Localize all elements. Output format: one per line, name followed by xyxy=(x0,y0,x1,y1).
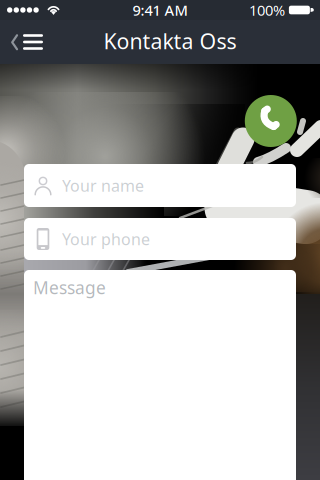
staticText: Message xyxy=(33,276,106,299)
button[interactable]: Call xyxy=(245,95,297,147)
staticText: Your phone xyxy=(62,228,150,250)
button[interactable]: Back xyxy=(0,20,22,64)
button[interactable]: Menu xyxy=(22,20,44,64)
button[interactable]: Your name xyxy=(24,164,296,207)
button[interactable]: Your phone xyxy=(24,218,296,260)
button[interactable]: Message xyxy=(24,270,296,480)
staticText: Your name xyxy=(62,175,144,196)
staticText: Kontakta Oss xyxy=(103,27,236,55)
staticText: 9:41 AM xyxy=(132,0,187,20)
staticText: 100% xyxy=(249,0,285,20)
